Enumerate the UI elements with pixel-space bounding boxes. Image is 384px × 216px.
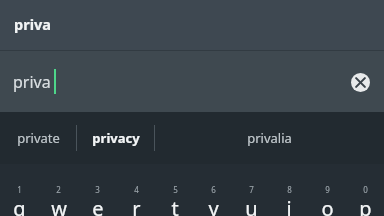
staticText: 6	[211, 184, 216, 195]
staticText: privacy	[92, 129, 140, 147]
staticText: 3	[95, 184, 100, 195]
staticText: t	[171, 195, 179, 216]
button[interactable]: w	[39, 195, 78, 216]
button[interactable]: private	[0, 112, 76, 164]
staticText: i	[286, 195, 292, 216]
staticText: 0	[363, 184, 368, 195]
button[interactable]: t	[156, 195, 194, 216]
button[interactable]: priva	[0, 0, 384, 50]
staticText: r	[132, 195, 141, 216]
staticText: priva	[14, 14, 51, 34]
button[interactable]: u	[232, 195, 270, 216]
button[interactable]: q	[0, 195, 39, 216]
staticText: 8	[287, 184, 292, 195]
staticText: u	[245, 195, 258, 216]
staticText: e	[92, 195, 104, 216]
staticText: y	[208, 195, 219, 216]
staticText: w	[51, 195, 67, 216]
staticText: 1	[17, 184, 22, 195]
button[interactable]: Clear search query	[340, 62, 380, 102]
button[interactable]: y	[194, 195, 232, 216]
staticText: 2	[56, 184, 61, 195]
button[interactable]: i	[270, 195, 308, 216]
button[interactable]: privacy	[77, 112, 154, 164]
button[interactable]: priva	[0, 51, 384, 112]
button[interactable]: privalia	[155, 112, 384, 164]
button[interactable]: o	[308, 195, 346, 216]
staticText: private	[17, 129, 60, 147]
button[interactable]: e	[78, 195, 117, 216]
staticText: 9	[325, 184, 330, 195]
staticText: o	[321, 195, 334, 216]
staticText: privalia	[247, 129, 292, 147]
staticText: 5	[173, 184, 178, 195]
staticText: p	[359, 195, 372, 216]
staticText: priva	[13, 71, 51, 93]
staticText: 7	[249, 184, 254, 195]
staticText: 4	[134, 184, 139, 195]
button[interactable]: p	[346, 195, 384, 216]
button[interactable]: r	[117, 195, 156, 216]
staticText: q	[13, 195, 26, 216]
